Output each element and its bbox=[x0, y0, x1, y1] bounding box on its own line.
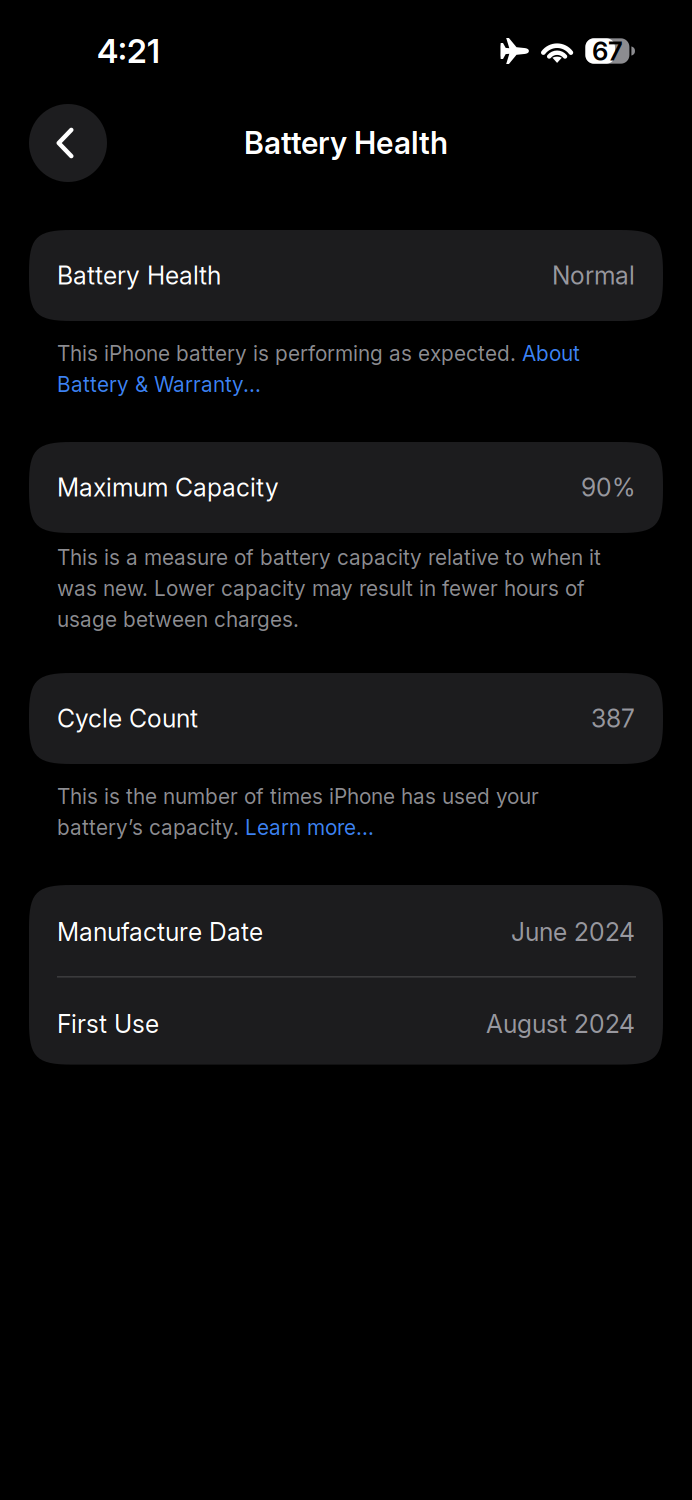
button[interactable]: Cycle Count bbox=[29, 673, 663, 764]
button[interactable]: Back bbox=[29, 104, 107, 182]
staticText: First Use bbox=[57, 1009, 159, 1039]
staticText: Maximum Capacity bbox=[57, 472, 279, 502]
staticText: 67 bbox=[592, 35, 623, 67]
staticText: Battery Health bbox=[57, 260, 221, 290]
button[interactable]: Battery Health bbox=[29, 230, 663, 321]
button[interactable]: First Use bbox=[29, 978, 663, 1065]
staticText: 90% bbox=[581, 472, 635, 502]
staticText: usage between charges. bbox=[57, 607, 299, 632]
staticText: was new. Lower capacity may result in fe… bbox=[57, 576, 585, 601]
staticText: Manufacture Date bbox=[57, 917, 263, 947]
button[interactable]: About bbox=[522, 341, 580, 366]
staticText: battery’s capacity. bbox=[57, 815, 245, 840]
staticText: Cycle Count bbox=[57, 703, 198, 733]
staticText: Learn more... bbox=[245, 815, 374, 840]
staticText: 4:21 bbox=[97, 31, 160, 71]
staticText: This is a measure of battery capacity re… bbox=[57, 545, 601, 570]
staticText: About bbox=[522, 341, 580, 366]
button[interactable]: Learn more... bbox=[245, 815, 374, 840]
staticText: This is the number of times iPhone has u… bbox=[57, 784, 539, 809]
staticText: This iPhone battery is performing as exp… bbox=[57, 341, 522, 366]
staticText: 387 bbox=[591, 703, 635, 733]
staticText: June 2024 bbox=[511, 917, 635, 947]
button[interactable]: Manufacture Date bbox=[29, 885, 663, 976]
staticText: Battery Health bbox=[244, 125, 448, 161]
button[interactable]: Battery & Warranty... bbox=[57, 372, 261, 397]
staticText: Battery & Warranty... bbox=[57, 372, 261, 397]
staticText: Normal bbox=[552, 260, 635, 290]
button[interactable]: Maximum Capacity bbox=[29, 442, 663, 533]
staticText: August 2024 bbox=[486, 1009, 635, 1039]
